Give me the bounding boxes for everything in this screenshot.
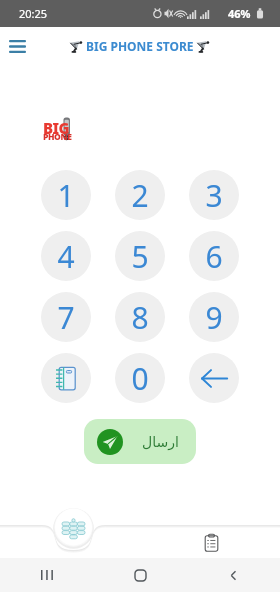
button[interactable]: 4 xyxy=(41,231,91,281)
staticText: 4 xyxy=(57,236,75,277)
button[interactable]: Dialpad xyxy=(54,509,93,548)
staticText: PHONE xyxy=(43,131,72,143)
button[interactable]: 7 xyxy=(41,292,91,342)
button[interactable]: Records xyxy=(196,528,226,558)
button[interactable]: Menu xyxy=(2,31,32,61)
staticText: 20:25 xyxy=(19,6,48,21)
staticText: 1 xyxy=(57,175,75,216)
staticText: 7 xyxy=(57,297,75,338)
button[interactable]: Backspace xyxy=(189,353,239,403)
staticText: 5 xyxy=(131,236,149,277)
button[interactable]: Recents xyxy=(0,558,94,592)
button[interactable]: 2 xyxy=(115,170,165,220)
button[interactable]: 8 xyxy=(115,292,165,342)
button[interactable]: 5 xyxy=(115,231,165,281)
staticText: 9 xyxy=(205,297,223,338)
staticText: 8 xyxy=(131,297,149,338)
button[interactable]: Back xyxy=(187,558,280,592)
button[interactable]: 0 xyxy=(115,353,165,403)
staticText: BIG PHONE STORE xyxy=(86,38,194,54)
staticText: 46% xyxy=(228,6,251,21)
staticText: 2 xyxy=(131,175,149,216)
button[interactable]: Contacts xyxy=(41,353,91,403)
button[interactable]: Home xyxy=(94,558,187,592)
button[interactable]: 9 xyxy=(189,292,239,342)
staticText: 6 xyxy=(205,236,223,277)
staticText: BIG xyxy=(43,118,70,138)
button[interactable]: 1 xyxy=(41,170,91,220)
button[interactable]: 3 xyxy=(189,170,239,220)
staticText: 3 xyxy=(205,175,223,216)
staticText: 0 xyxy=(131,358,149,399)
button[interactable]: 6 xyxy=(189,231,239,281)
staticText: ارسال xyxy=(142,434,179,450)
button[interactable]: ارسال xyxy=(84,419,196,464)
